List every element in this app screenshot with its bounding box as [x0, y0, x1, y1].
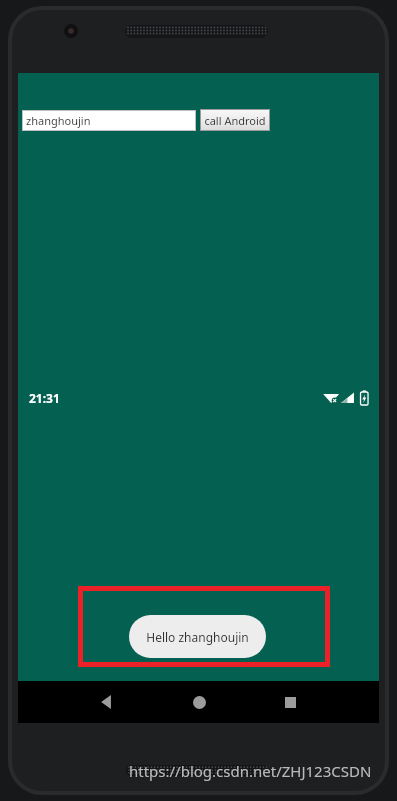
staticText: Hello zhanghoujin: [146, 629, 249, 645]
button[interactable]: zhanghoujin: [22, 110, 196, 131]
staticText: zhanghoujin: [26, 113, 91, 128]
staticText: 21:31: [29, 390, 60, 406]
button[interactable]: Home: [178, 681, 220, 723]
button[interactable]: call Android: [200, 109, 270, 131]
staticText: https://blog.csdn.net/ZHJ123CSDN: [129, 761, 372, 781]
button[interactable]: Recent apps: [269, 681, 311, 723]
button[interactable]: Back: [86, 681, 128, 723]
button[interactable]: Hello zhanghoujin: [129, 615, 266, 658]
staticText: call Android: [204, 113, 266, 128]
